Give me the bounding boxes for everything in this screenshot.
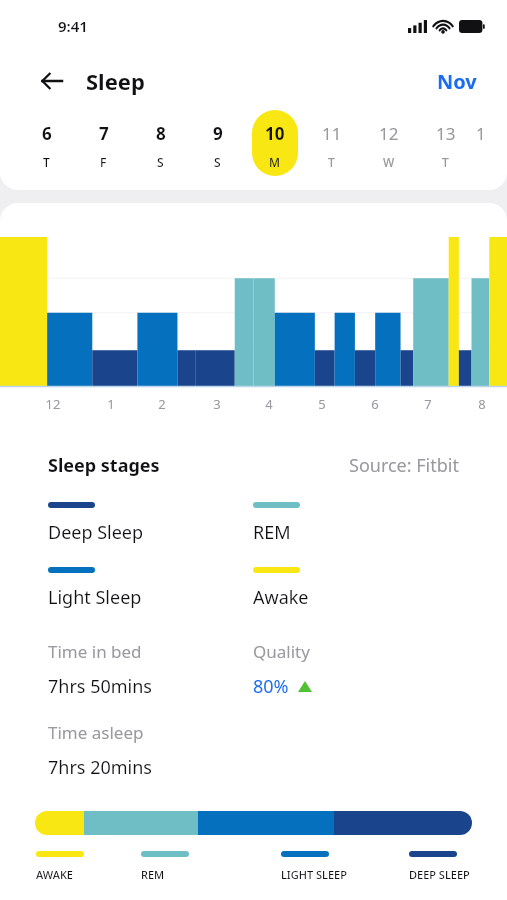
button[interactable]: LIGHT SLEEP <box>281 851 409 882</box>
button[interactable]: 11 <box>303 110 360 180</box>
staticText: 12 <box>42 395 64 413</box>
staticText: 11 <box>322 122 342 145</box>
staticText: S <box>157 154 164 170</box>
staticText: 10 <box>265 122 285 145</box>
button[interactable]: 7 <box>75 110 132 180</box>
staticText: 6 <box>364 395 386 413</box>
staticText: 8 <box>156 122 166 145</box>
button[interactable]: Light Sleep <box>48 567 253 610</box>
staticText: 5 <box>311 395 333 413</box>
button[interactable]: Nov <box>431 64 483 99</box>
button[interactable]: REM <box>141 851 281 882</box>
button[interactable]: 10 <box>246 110 303 180</box>
staticText: S <box>214 154 221 170</box>
staticText: 9 <box>213 122 223 145</box>
button[interactable]: 6 <box>18 110 75 180</box>
staticText: Quality <box>253 640 310 663</box>
staticText: Nov <box>437 68 477 95</box>
staticText: LIGHT SLEEP <box>281 867 347 882</box>
staticText: 3 <box>206 395 228 413</box>
staticText: 7hrs 50mins <box>48 674 152 699</box>
staticText: 1 <box>100 395 122 413</box>
staticText: Time in bed <box>48 640 142 663</box>
button[interactable]: 9 <box>189 110 246 180</box>
staticText: T <box>328 154 335 170</box>
staticText: 2 <box>151 395 173 413</box>
staticText: REM <box>141 867 165 882</box>
staticText: 80% <box>253 674 289 699</box>
button[interactable]: REM <box>253 502 459 545</box>
button[interactable]: 12 <box>360 110 417 180</box>
staticText: 6 <box>42 122 52 145</box>
staticText: 7 <box>99 122 109 145</box>
staticText: 9:41 <box>58 16 88 36</box>
staticText: Sleep stages <box>48 453 160 478</box>
button[interactable]: 8 <box>132 110 189 180</box>
staticText: Sleep <box>86 66 145 96</box>
staticText: W <box>383 154 395 170</box>
staticText: T <box>442 154 449 170</box>
staticText: 7 <box>417 395 439 413</box>
staticText: 13 <box>436 122 456 145</box>
staticText: T <box>43 154 50 170</box>
button[interactable] <box>35 811 472 835</box>
staticText: 12 <box>379 122 399 145</box>
staticText: AWAKE <box>36 867 73 882</box>
staticText: M <box>269 154 281 170</box>
button[interactable]: 13 <box>417 110 474 180</box>
staticText: DEEP SLEEP <box>409 867 470 882</box>
staticText: Deep Sleep <box>48 520 144 545</box>
staticText: 7hrs 20mins <box>48 755 152 780</box>
button[interactable]: 1 <box>474 110 504 180</box>
button[interactable]: Awake <box>253 567 459 610</box>
staticText: 1 <box>476 122 486 145</box>
staticText: F <box>100 154 107 170</box>
button[interactable]: AWAKE <box>36 851 141 882</box>
staticText: 8 <box>471 395 493 413</box>
staticText: Source: Fitbit <box>349 453 459 478</box>
button[interactable]: DEEP SLEEP <box>409 851 487 882</box>
staticText: 4 <box>258 395 280 413</box>
button[interactable]: Back <box>30 59 74 103</box>
button[interactable]: Deep Sleep <box>48 502 253 545</box>
staticText: Light Sleep <box>48 585 142 610</box>
staticText: REM <box>253 520 291 545</box>
staticText: Awake <box>253 585 309 610</box>
staticText: Time asleep <box>48 721 144 744</box>
